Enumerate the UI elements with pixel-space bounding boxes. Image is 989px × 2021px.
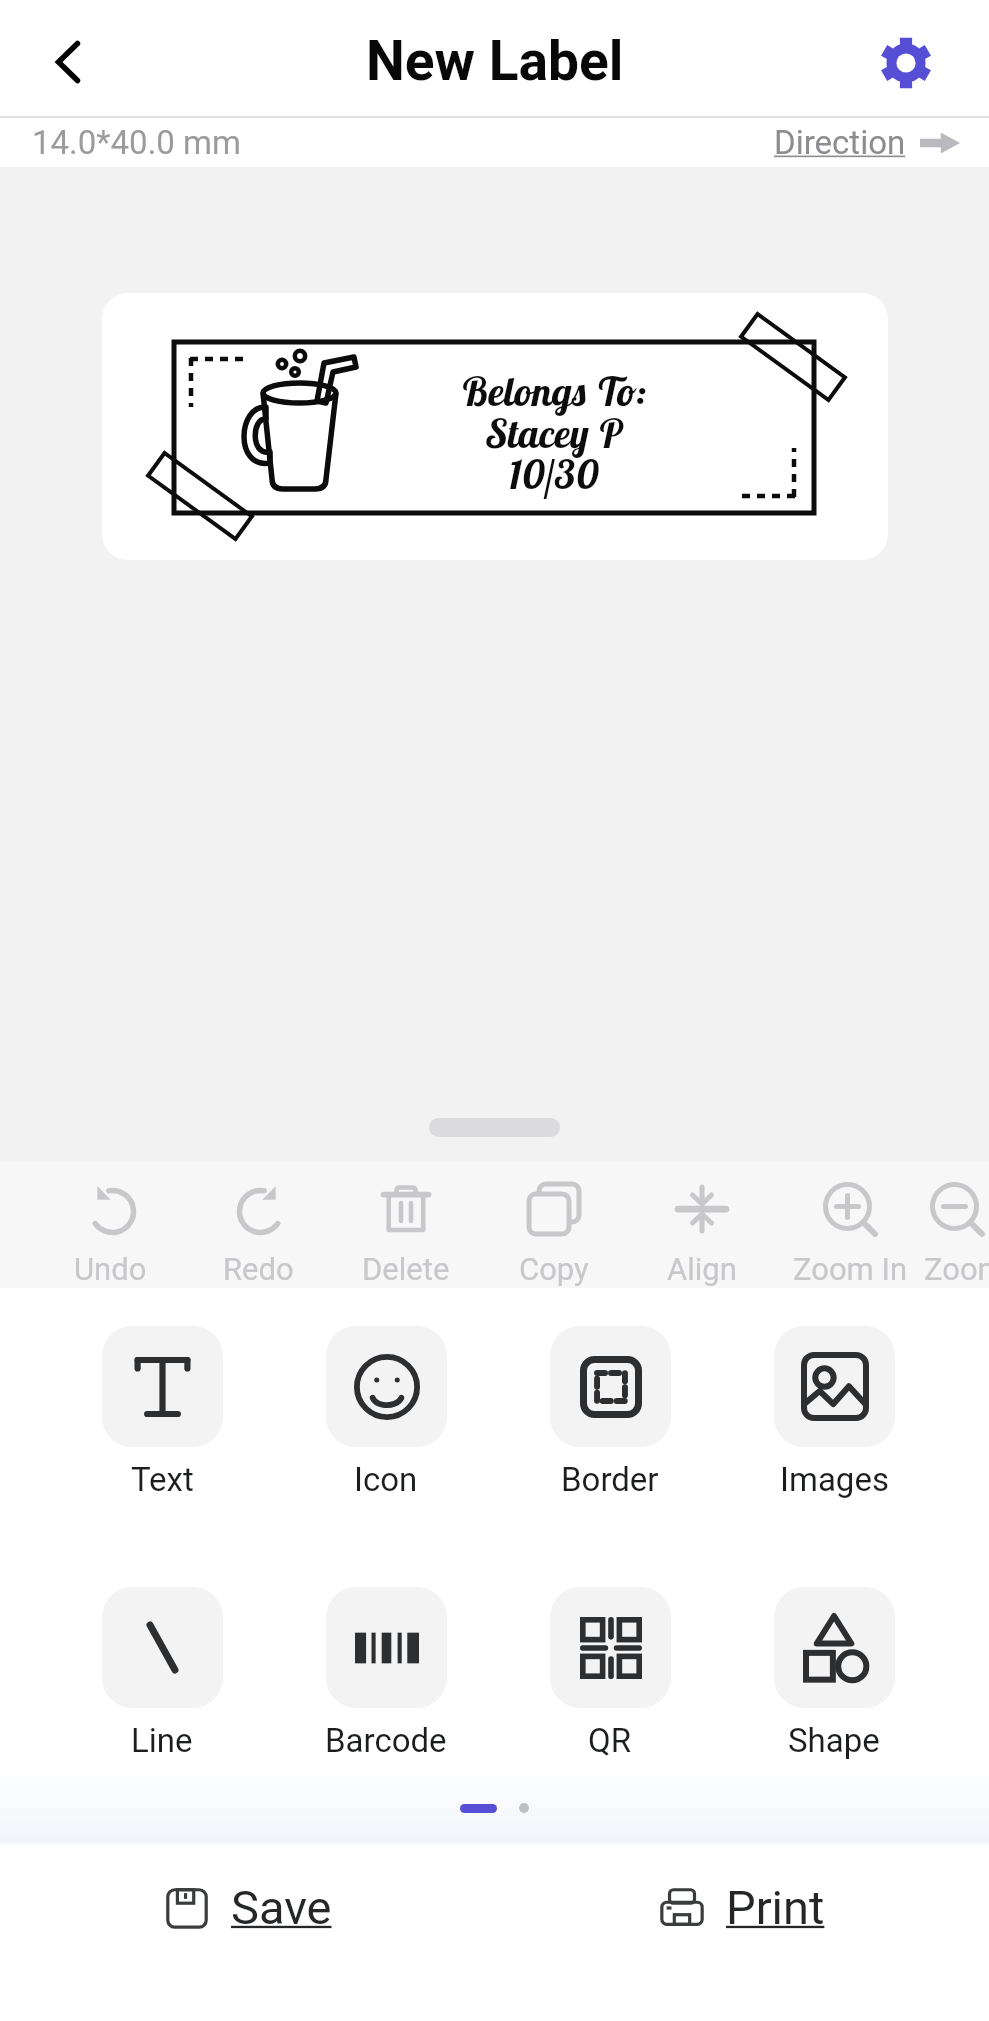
staticText: Undo — [74, 1251, 147, 1287]
button[interactable]: Border — [498, 1326, 722, 1499]
staticText: Zoom Out — [924, 1251, 989, 1287]
button[interactable]: Shape — [722, 1587, 946, 1760]
staticText: Barcode — [325, 1721, 447, 1760]
button[interactable]: Zoom Out — [924, 1162, 989, 1288]
button[interactable]: QR — [498, 1587, 722, 1760]
staticText: 10/30 — [434, 449, 674, 499]
button[interactable]: Line — [50, 1587, 274, 1760]
staticText: Print — [726, 1880, 825, 1935]
staticText: Shape — [788, 1721, 880, 1760]
staticText: Save — [231, 1880, 332, 1935]
staticText: Delete — [362, 1251, 450, 1287]
button[interactable]: Direction — [774, 118, 960, 167]
button[interactable]: Undo — [36, 1162, 184, 1288]
button[interactable]: Settings — [868, 19, 944, 107]
staticText: Belongs To: — [434, 366, 674, 416]
staticText: Redo — [223, 1251, 294, 1287]
staticText: Line — [131, 1721, 193, 1760]
staticText: QR — [588, 1721, 632, 1760]
button[interactable]: Icon — [274, 1326, 498, 1499]
button[interactable]: Back — [26, 18, 110, 106]
staticText: Align — [667, 1251, 737, 1287]
staticText: Icon — [354, 1460, 418, 1499]
staticText: Border — [561, 1460, 659, 1499]
staticText: New Label — [366, 29, 624, 93]
staticText: Images — [780, 1460, 889, 1499]
staticText: 14.0*40.0 mm — [32, 123, 241, 162]
button[interactable]: Delete — [332, 1162, 480, 1288]
button[interactable]: Belongs To: — [102, 293, 888, 560]
staticText: Text — [131, 1460, 194, 1499]
staticText: Copy — [519, 1251, 589, 1287]
button[interactable]: Save — [163, 1880, 332, 1935]
button[interactable]: Align — [628, 1162, 776, 1288]
staticText: Stacey P — [434, 408, 674, 458]
button[interactable]: Zoom In — [776, 1162, 924, 1288]
button[interactable]: Barcode — [274, 1587, 498, 1760]
button[interactable]: Images — [722, 1326, 946, 1499]
button[interactable]: Text — [50, 1326, 274, 1499]
button[interactable]: Print — [658, 1880, 825, 1935]
button[interactable]: Redo — [184, 1162, 332, 1288]
staticText: Zoom In — [793, 1251, 908, 1287]
staticText: Direction — [774, 123, 906, 162]
button[interactable]: Copy — [480, 1162, 628, 1288]
